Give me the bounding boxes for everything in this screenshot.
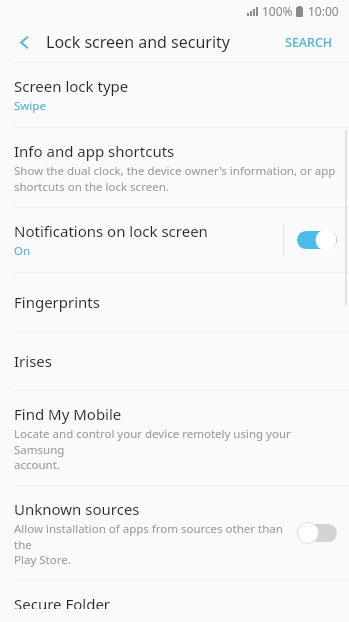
staticText: Secure Folder	[14, 594, 111, 609]
staticText: Notifications on lock screen	[14, 221, 208, 241]
button[interactable]: Secure Folder	[0, 581, 349, 622]
staticText: Fingerprints	[14, 292, 100, 312]
staticText: Unknown sources	[14, 499, 140, 519]
button[interactable]: Screen lock type	[0, 63, 349, 127]
staticText: Show the dual clock, the device owner's …	[14, 163, 336, 194]
staticText: Screen lock type	[14, 76, 129, 96]
staticText: 10:00	[308, 3, 339, 19]
staticText: On	[14, 243, 31, 259]
button[interactable]: Toggle Unknown sources	[297, 522, 337, 544]
button[interactable]: Fingerprints	[0, 273, 349, 331]
button[interactable]: Back	[12, 30, 36, 54]
staticText: Info and app shortcuts	[14, 141, 175, 161]
staticText: Locate and control your device remotely …	[14, 426, 337, 472]
staticText: 100%	[262, 3, 293, 19]
button[interactable]: SEARCH	[281, 30, 337, 55]
button[interactable]: Irises	[0, 332, 349, 390]
staticText: Lock screen and security	[46, 31, 230, 53]
button[interactable]: Find My Mobile	[0, 391, 349, 485]
button[interactable]: Unknown sources	[0, 486, 349, 580]
staticText: Swipe	[14, 98, 46, 114]
button[interactable]: Info and app shortcuts	[0, 128, 349, 207]
staticText: SEARCH	[285, 34, 333, 51]
button[interactable]: Notifications on lock screen	[0, 208, 349, 272]
staticText: Allow installation of apps from sources …	[14, 521, 297, 567]
staticText: Find My Mobile	[14, 404, 122, 424]
button[interactable]: Toggle Notifications on lock screen	[297, 229, 337, 251]
staticText: Irises	[14, 351, 52, 371]
